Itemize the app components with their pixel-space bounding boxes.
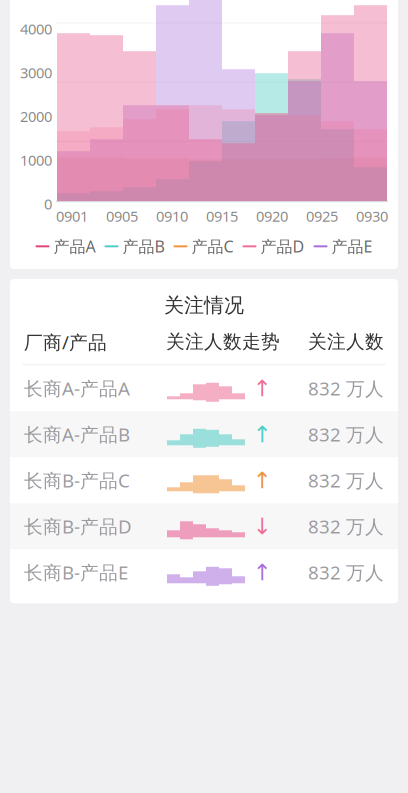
- staticText: 0915: [206, 206, 238, 226]
- staticText: 长商B-产品E: [24, 560, 128, 585]
- staticText: 长商B-产品D: [24, 514, 132, 539]
- staticText: 832 万人: [308, 560, 384, 585]
- staticText: 产品A: [53, 236, 95, 257]
- staticText: ↓: [252, 513, 271, 539]
- staticText: 3000: [20, 63, 52, 82]
- staticText: 关注人数走势: [166, 330, 280, 353]
- staticText: 0925: [306, 206, 338, 226]
- staticText: 0920: [256, 206, 288, 226]
- staticText: 厂商/产品: [24, 329, 107, 354]
- button[interactable]: 长商A-产品A: [10, 365, 398, 411]
- staticText: 832 万人: [308, 376, 384, 401]
- staticText: ↑: [252, 559, 271, 585]
- staticText: 2000: [20, 107, 52, 126]
- staticText: 1000: [20, 150, 52, 170]
- staticText: 0930: [356, 206, 388, 226]
- staticText: 长商B-产品C: [24, 468, 130, 493]
- button[interactable]: 长商B-产品C: [10, 457, 398, 503]
- staticText: 832 万人: [308, 422, 384, 447]
- staticText: 产品B: [122, 236, 164, 257]
- staticText: 关注人数: [308, 330, 384, 353]
- staticText: 关注情况: [164, 293, 244, 317]
- staticText: 832 万人: [308, 468, 384, 493]
- staticText: 0901: [56, 206, 88, 226]
- staticText: ↑: [252, 375, 271, 401]
- button[interactable]: 长商A-产品B: [10, 411, 398, 457]
- staticText: 0910: [156, 206, 188, 226]
- staticText: 产品D: [260, 236, 304, 257]
- staticText: 长商A-产品A: [24, 376, 130, 401]
- button[interactable]: 长商B-产品D: [10, 503, 398, 549]
- staticText: 产品C: [191, 236, 233, 257]
- staticText: 长商A-产品B: [24, 422, 130, 447]
- staticText: ↑: [252, 467, 271, 493]
- staticText: 4000: [20, 19, 52, 39]
- staticText: 0: [44, 194, 52, 213]
- button[interactable]: 长商B-产品E: [10, 549, 398, 595]
- staticText: 832 万人: [308, 514, 384, 539]
- staticText: 0905: [106, 206, 138, 226]
- staticText: 产品E: [331, 236, 372, 257]
- staticText: ↑: [252, 421, 271, 447]
